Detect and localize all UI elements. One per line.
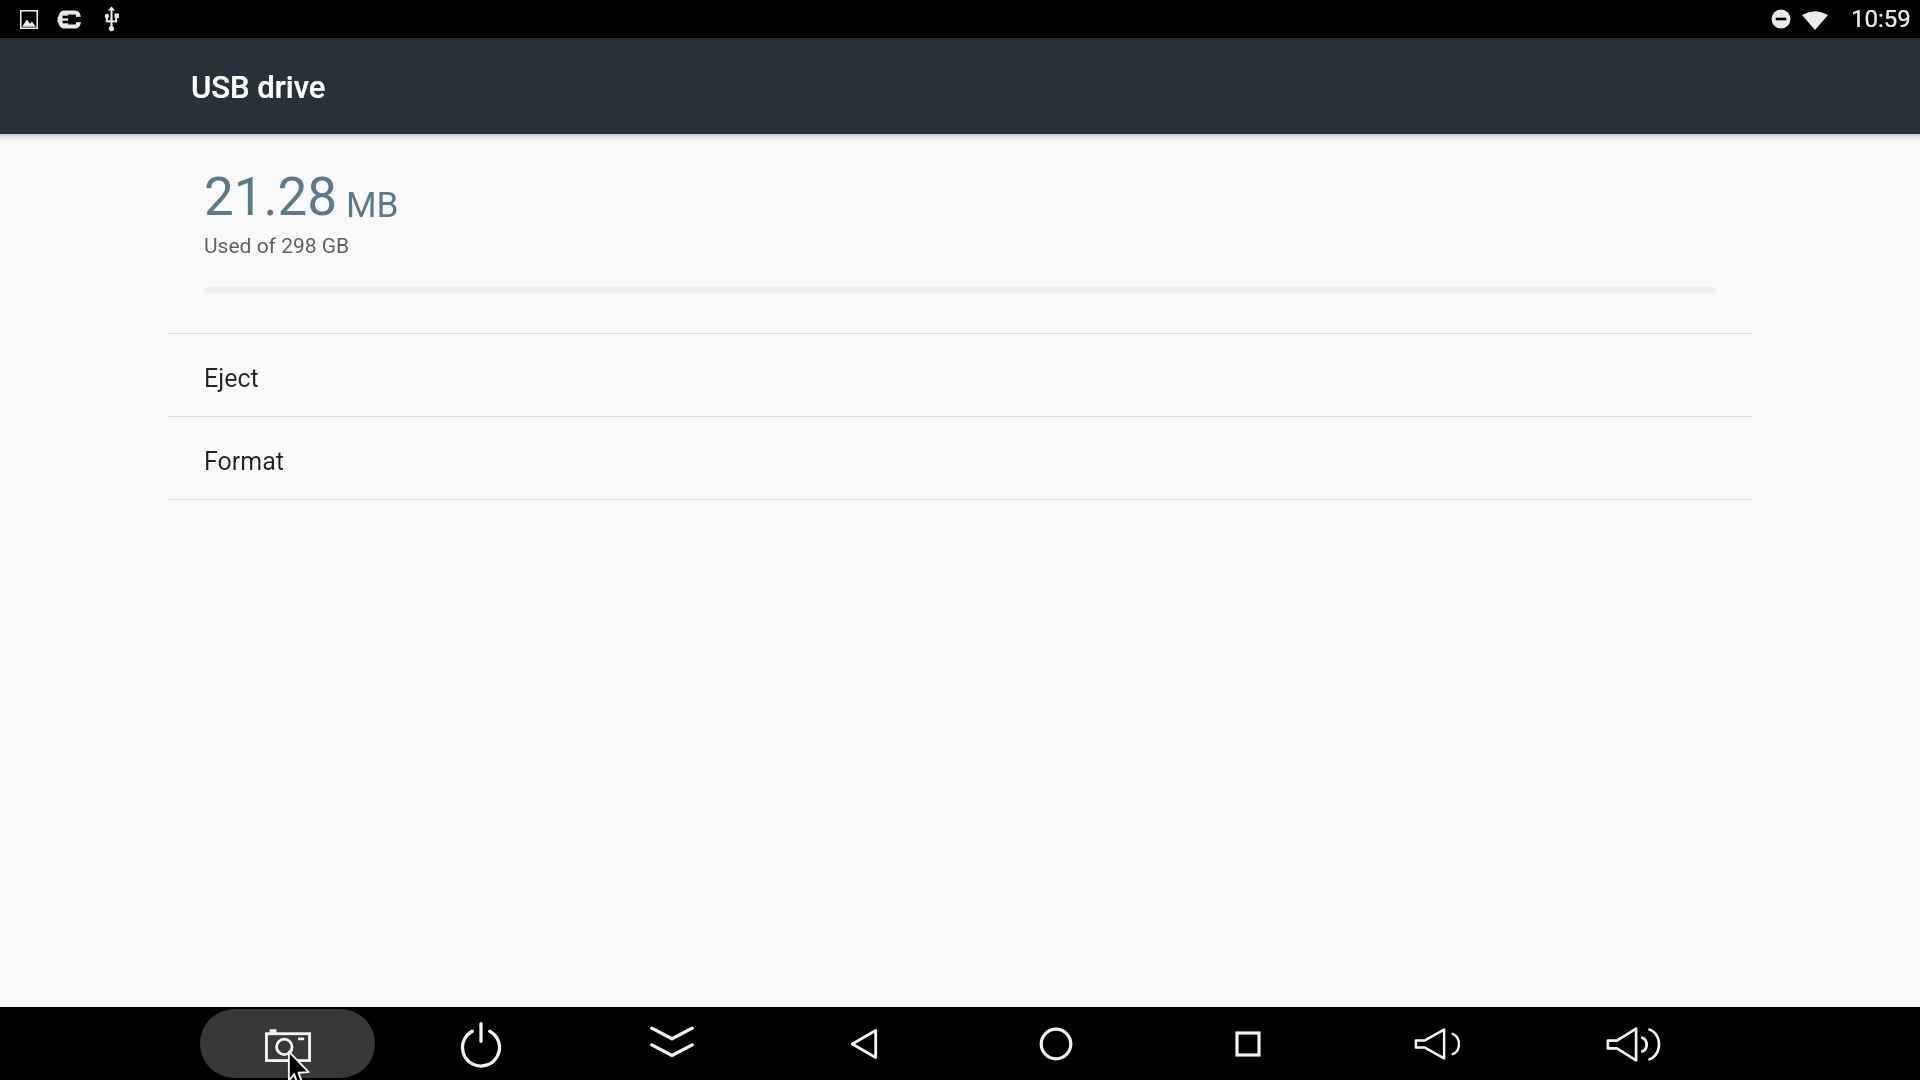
staticText: 21.28 xyxy=(204,166,338,228)
button[interactable]: Expand quick settings xyxy=(636,1008,708,1080)
staticText: MB xyxy=(346,185,399,226)
button[interactable]: Recents xyxy=(1212,1008,1284,1080)
button[interactable]: Volume down xyxy=(1401,1008,1473,1080)
staticText: Format xyxy=(204,447,284,476)
button[interactable]: Screenshot xyxy=(200,1009,375,1078)
staticText: Eject xyxy=(204,364,259,393)
button[interactable]: Back xyxy=(828,1008,900,1080)
button[interactable]: Home xyxy=(1020,1008,1092,1080)
button[interactable]: Eject xyxy=(0,334,1920,416)
button[interactable]: Volume up xyxy=(1597,1008,1669,1080)
staticText: Used of 298 GB xyxy=(204,234,350,259)
staticText: 10:59 xyxy=(1851,5,1911,33)
staticText: USB drive xyxy=(191,69,326,105)
button[interactable]: Format xyxy=(0,417,1920,499)
button[interactable]: Power xyxy=(445,1008,517,1080)
